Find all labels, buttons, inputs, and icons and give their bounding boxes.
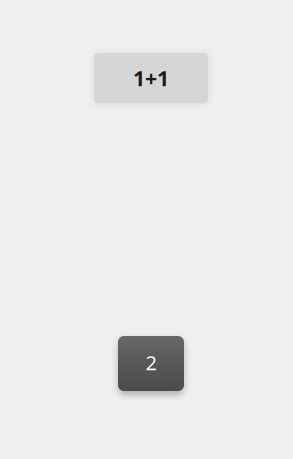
button[interactable]: 2 [118,336,184,391]
staticText: 1+1 [133,64,169,92]
staticText: 2 [145,349,156,376]
